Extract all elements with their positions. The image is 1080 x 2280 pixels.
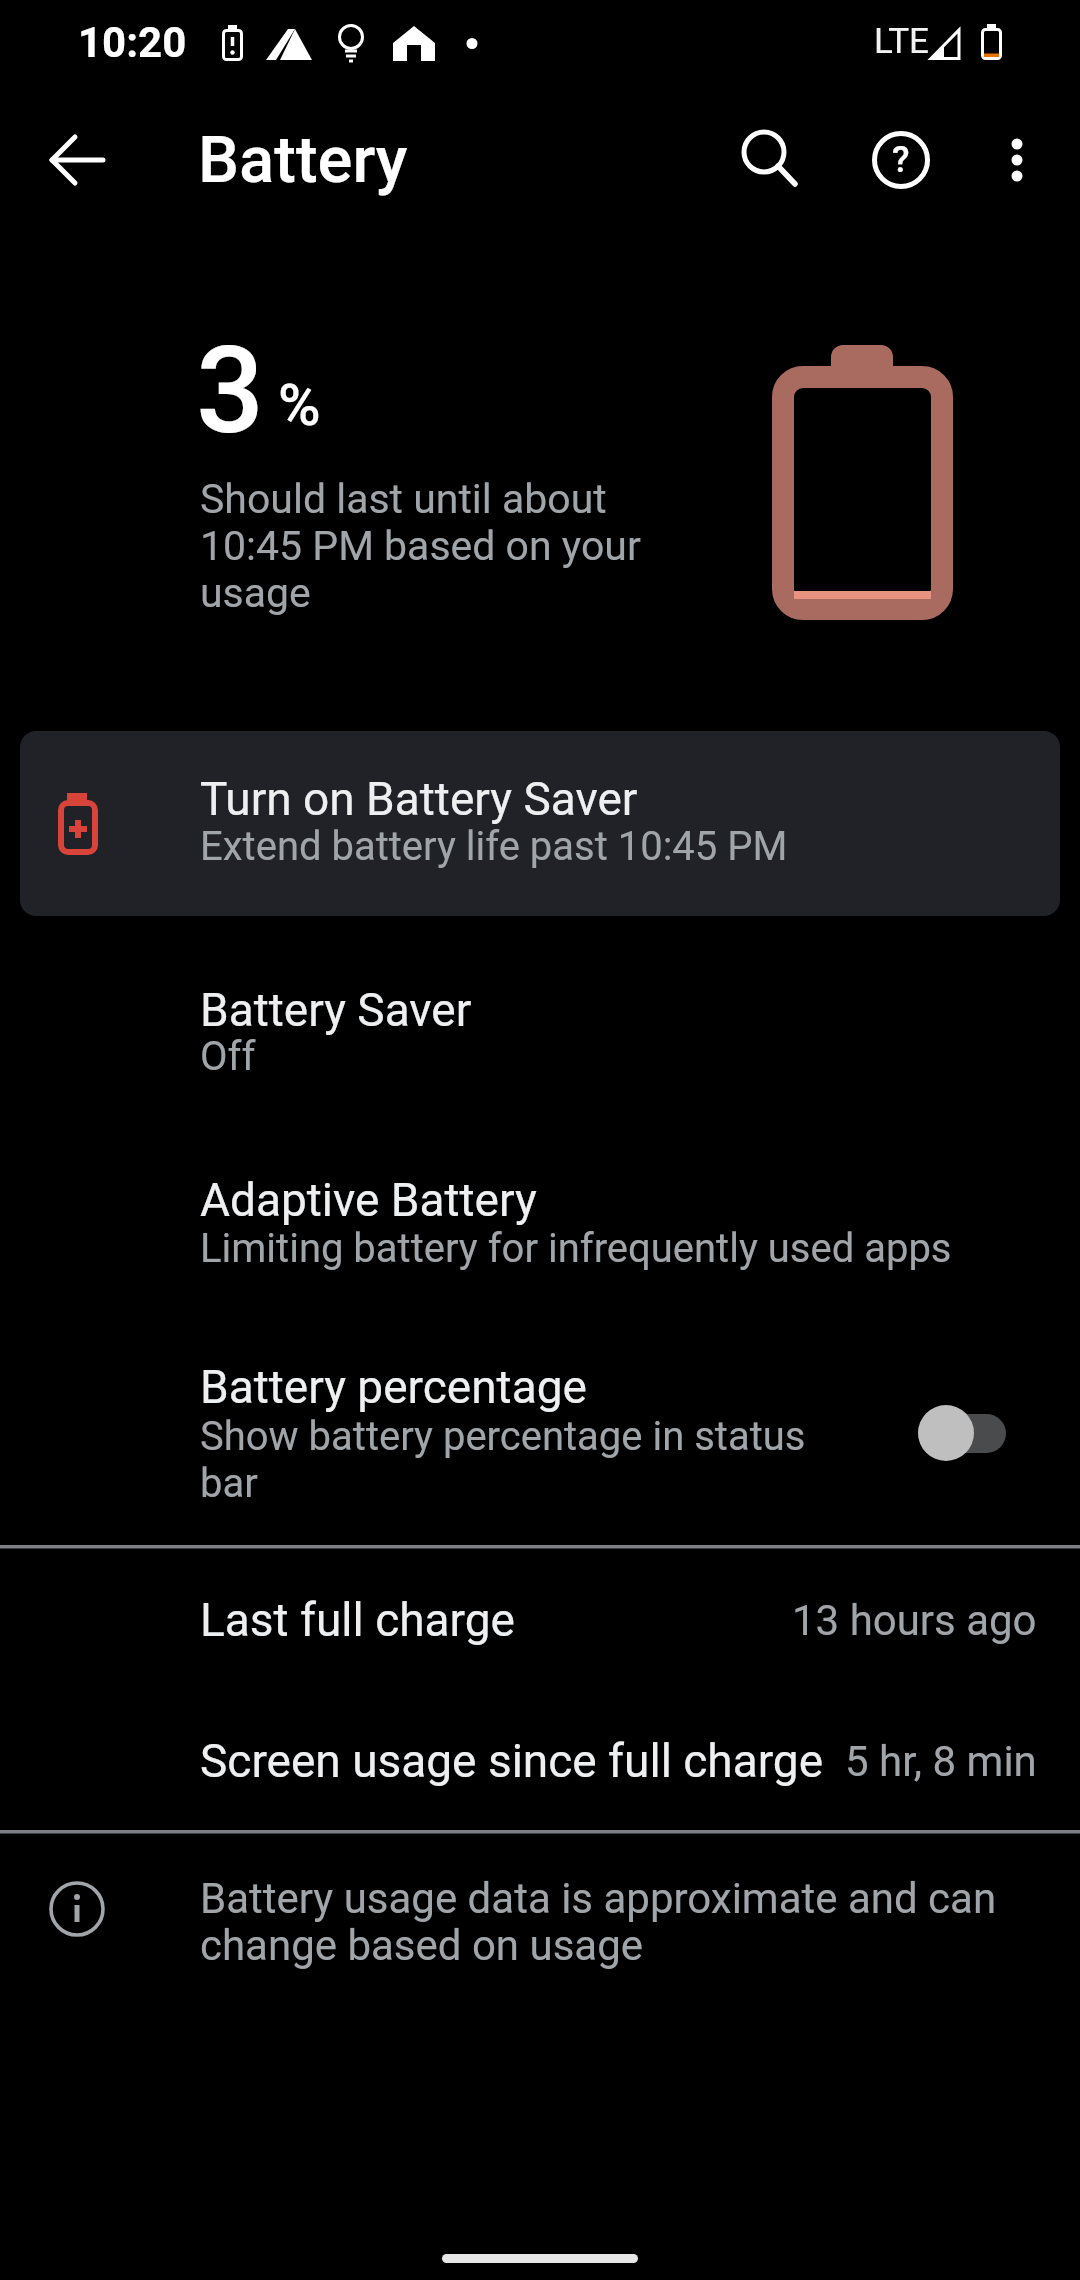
- staticText: LTE: [874, 21, 929, 62]
- staticText: Limiting battery for infrequently used a…: [200, 1225, 952, 1272]
- staticText: Battery percentage: [200, 1360, 587, 1414]
- staticText: Should last until about 10:45 PM based o…: [200, 475, 641, 617]
- staticText: 13 hours ago: [792, 1596, 1037, 1645]
- staticText: bar: [200, 1460, 258, 1507]
- button[interactable]: Battery Saver: [0, 955, 1080, 1105]
- staticText: Screen usage since full charge: [200, 1734, 824, 1788]
- button[interactable]: Screen usage since full charge: [0, 1700, 1080, 1822]
- staticText: Battery: [198, 122, 408, 198]
- button[interactable]: ?: [853, 112, 949, 208]
- staticText: Extend battery life past 10:45 PM: [200, 823, 788, 870]
- staticText: Battery Saver: [200, 983, 472, 1037]
- staticText: Off: [200, 1033, 256, 1080]
- button[interactable]: Adaptive Battery: [0, 1145, 1080, 1295]
- staticText: ?: [892, 139, 910, 181]
- staticText: Last full charge: [200, 1593, 515, 1647]
- staticText: Show battery percentage in status: [200, 1413, 806, 1460]
- staticText: Adaptive Battery: [200, 1173, 537, 1227]
- button[interactable]: Battery percentage: [0, 1333, 1080, 1528]
- staticText: Turn on Battery Saver: [200, 772, 638, 826]
- button[interactable]: [716, 106, 812, 202]
- staticText: 3: [196, 321, 265, 441]
- staticText: %: [278, 371, 321, 439]
- button[interactable]: Turn on Battery Saver: [20, 731, 1060, 916]
- staticText: 10:20: [78, 18, 187, 67]
- staticText: 5 hr, 8 min: [845, 1737, 1037, 1786]
- button[interactable]: [910, 1395, 1014, 1475]
- button[interactable]: [30, 112, 126, 208]
- button[interactable]: [969, 112, 1065, 208]
- button[interactable]: Last full charge: [0, 1560, 1080, 1680]
- staticText: Battery usage data is approximate and ca…: [200, 1874, 997, 1970]
